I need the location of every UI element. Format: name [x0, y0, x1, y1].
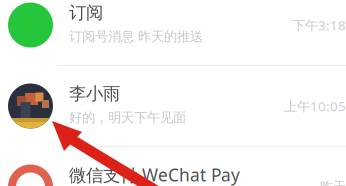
staticText: 上午10:05	[284, 97, 346, 115]
staticText: 李小雨	[69, 83, 120, 104]
staticText: 好的，明天下午见面	[69, 109, 186, 126]
staticText: 下午3:18	[292, 16, 346, 34]
staticText: 订阅号消息 昨天的推送	[69, 28, 203, 45]
staticText: 昨天	[320, 179, 346, 186]
button[interactable]: 微信支付 WeChat Pay	[0, 147, 346, 186]
button[interactable]: 订阅	[0, 0, 346, 66]
staticText: 微信支付 WeChat Pay	[69, 163, 240, 186]
staticText: 订阅	[69, 2, 103, 23]
button[interactable]: 李小雨	[0, 66, 346, 147]
